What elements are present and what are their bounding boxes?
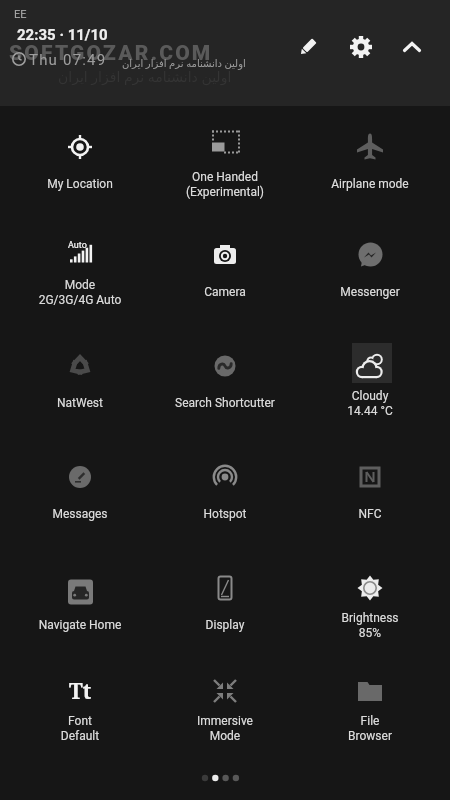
staticText: Cloudy 14.44 °C [297,389,443,418]
staticText: Search Shortcutter [152,396,298,410]
staticText: Immersive Mode [152,714,298,743]
button[interactable]: Hotspot [152,451,298,545]
staticText: اولین دانشنامه نرم افزار ایران [58,67,232,86]
button[interactable]: File Browser [297,665,443,759]
button[interactable]: Brightness 85% [297,562,443,656]
staticText: Hotspot [152,507,298,521]
staticText: SOFTGOZAR.COM [9,41,213,66]
staticText: Camera [152,285,298,299]
staticText: Auto [68,240,87,251]
staticText: My Location [7,177,153,191]
staticText: Thu 07:49 [29,51,107,69]
staticText: Mode 2G/3G/4G Auto [7,278,153,307]
button[interactable]: Navigate Home [7,562,153,656]
staticText: Messenger [297,285,443,299]
staticText: اولین دانشنامه نرم افزار ایران [122,56,246,70]
staticText: Brightness 85% [297,611,443,640]
button[interactable]: Messenger [297,229,443,323]
button[interactable]: Airplane mode [297,121,443,215]
button[interactable]: My Location [7,121,153,215]
button[interactable]: Display [152,562,298,656]
button[interactable]: Immersive Mode [152,665,298,759]
staticText: Font Default [7,714,153,743]
staticText: File Browser [297,714,443,743]
staticText: Messages [7,507,153,521]
staticText: Tt [69,677,92,706]
button[interactable]: One Handed (Experimental) [152,121,298,215]
button[interactable] [399,36,425,58]
staticText: NFC [297,507,443,521]
button[interactable]: Auto [7,229,153,323]
button[interactable]: NatWest [7,340,153,434]
staticText: 22:35 · 11/10 [17,26,108,44]
button[interactable]: Cloudy 14.44 °C [297,340,443,434]
button[interactable] [294,33,322,61]
staticText: Display [152,618,298,632]
staticText: EE [14,8,27,21]
button[interactable]: Tt [7,665,153,759]
button[interactable]: NFC [297,451,443,545]
staticText: Airplane mode [297,177,443,191]
staticText: Navigate Home [7,618,153,632]
button[interactable]: Messages [7,451,153,545]
button[interactable] [347,33,375,61]
button[interactable]: Search Shortcutter [152,340,298,434]
staticText: One Handed (Experimental) [152,170,298,199]
button[interactable]: Camera [152,229,298,323]
staticText: NatWest [7,396,153,410]
